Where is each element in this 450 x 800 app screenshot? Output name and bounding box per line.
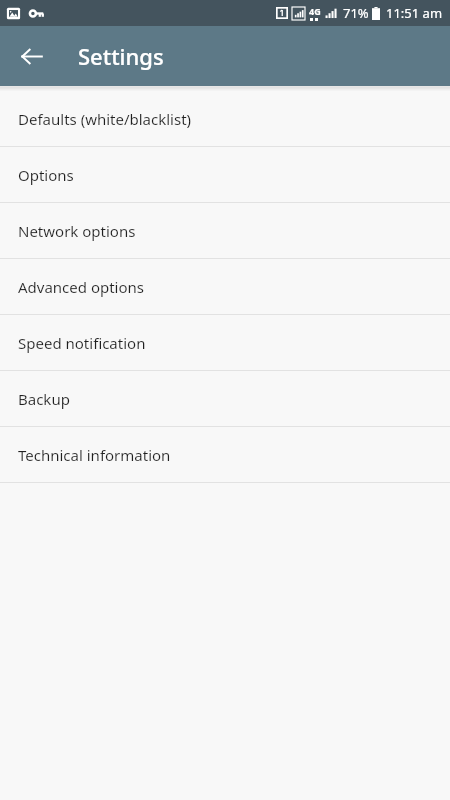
- staticText: Backup: [18, 389, 70, 409]
- staticText: 4G: [309, 5, 321, 17]
- staticText: Advanced options: [18, 277, 145, 297]
- staticText: Speed notification: [18, 333, 146, 353]
- button[interactable]: Speed notification: [0, 315, 450, 371]
- staticText: Technical information: [18, 445, 171, 465]
- button[interactable]: Defaults (white/blacklist): [0, 91, 450, 147]
- staticText: Options: [18, 165, 74, 185]
- staticText: Settings: [78, 41, 164, 71]
- button[interactable]: Technical information: [0, 427, 450, 483]
- staticText: 11:51 am: [386, 4, 443, 22]
- button[interactable]: Advanced options: [0, 259, 450, 315]
- button[interactable]: Backup: [0, 371, 450, 427]
- staticText: Defaults (white/blacklist): [18, 109, 192, 129]
- staticText: 71%: [343, 4, 369, 22]
- button[interactable]: Back: [8, 33, 54, 79]
- button[interactable]: Options: [0, 147, 450, 203]
- button[interactable]: Network options: [0, 203, 450, 259]
- staticText: Network options: [18, 221, 136, 241]
